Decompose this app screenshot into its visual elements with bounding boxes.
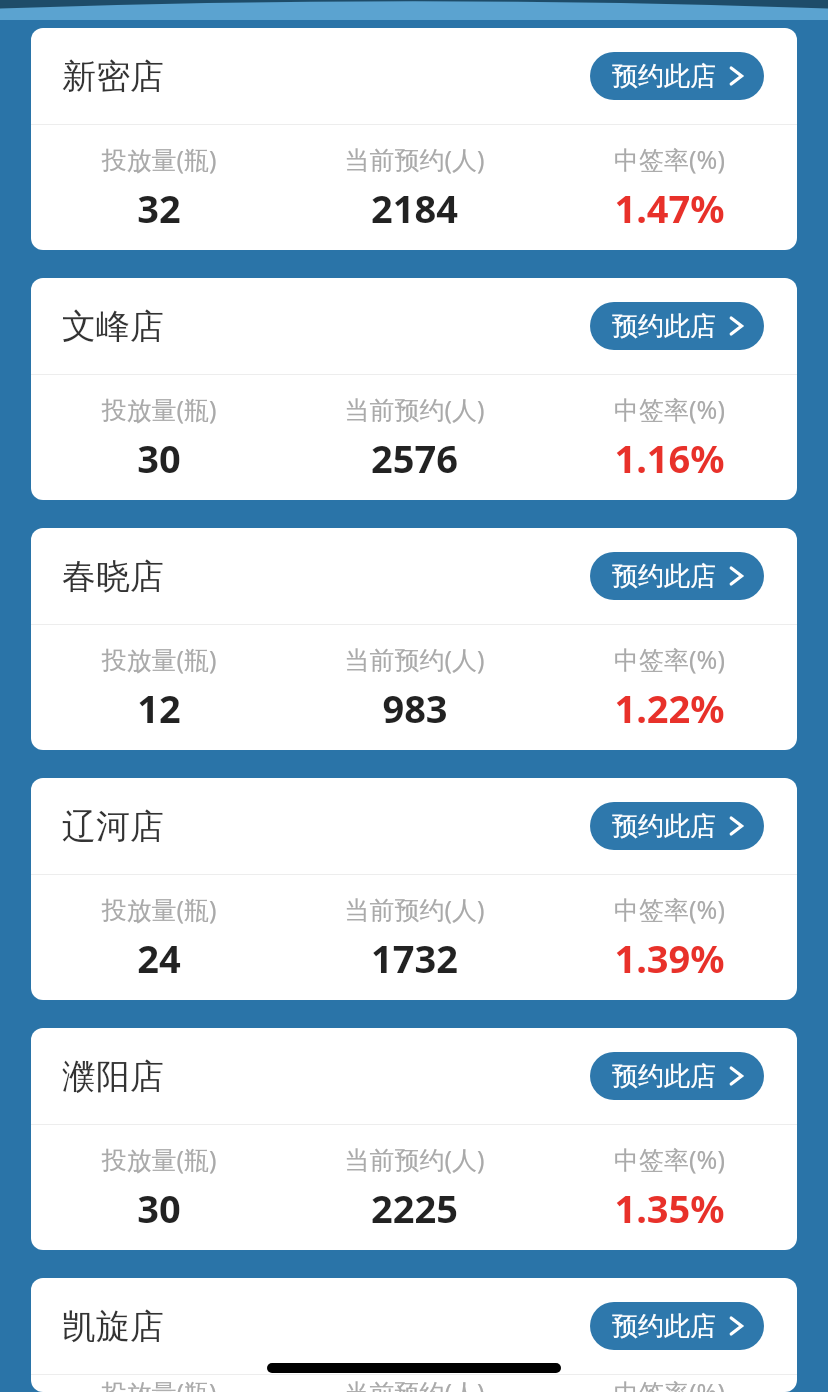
staticText: 当前预约(人) bbox=[344, 142, 485, 176]
button[interactable]: 预约此店 bbox=[590, 52, 764, 100]
staticText: 预约此店 bbox=[612, 60, 716, 93]
button[interactable]: 预约此店 bbox=[590, 1052, 764, 1100]
button[interactable]: 春晓店 bbox=[31, 528, 797, 750]
button[interactable]: 预约此店 bbox=[590, 552, 764, 600]
staticText: 中签率(%) bbox=[614, 1375, 725, 1392]
staticText: 2225 bbox=[371, 1182, 458, 1234]
staticText: 1.16% bbox=[614, 432, 725, 484]
staticText: 983 bbox=[382, 682, 448, 734]
staticText: 1.39% bbox=[614, 932, 725, 984]
staticText: 预约此店 bbox=[612, 810, 716, 843]
button[interactable]: 濮阳店 bbox=[31, 1028, 797, 1250]
staticText: 中签率(%) bbox=[614, 892, 725, 926]
staticText: 中签率(%) bbox=[614, 392, 725, 426]
staticText: 投放量(瓶) bbox=[101, 642, 217, 676]
staticText: 投放量(瓶) bbox=[101, 392, 217, 426]
button[interactable]: 文峰店 bbox=[31, 278, 797, 500]
staticText: 中签率(%) bbox=[614, 642, 725, 676]
staticText: 当前预约(人) bbox=[344, 1142, 485, 1176]
staticText: 当前预约(人) bbox=[344, 1375, 485, 1392]
staticText: 1.22% bbox=[614, 682, 725, 734]
staticText: 凯旋店 bbox=[62, 1305, 164, 1348]
staticText: 预约此店 bbox=[612, 310, 716, 343]
staticText: 投放量(瓶) bbox=[101, 142, 217, 176]
staticText: 预约此店 bbox=[612, 1310, 716, 1343]
other: 前往预约 bbox=[726, 1316, 746, 1336]
staticText: 濮阳店 bbox=[62, 1055, 164, 1098]
button[interactable]: 预约此店 bbox=[590, 1302, 764, 1350]
other: 前往预约 bbox=[726, 816, 746, 836]
staticText: 2576 bbox=[371, 432, 458, 484]
staticText: 预约此店 bbox=[612, 1060, 716, 1093]
button[interactable]: 预约此店 bbox=[590, 802, 764, 850]
staticText: 当前预约(人) bbox=[344, 392, 485, 426]
other: 前往预约 bbox=[726, 316, 746, 336]
staticText: 中签率(%) bbox=[614, 1142, 725, 1176]
staticText: 投放量(瓶) bbox=[101, 1375, 217, 1392]
button[interactable]: 预约此店 bbox=[590, 302, 764, 350]
staticText: 1.47% bbox=[614, 182, 725, 234]
other: 前往预约 bbox=[726, 566, 746, 586]
staticText: 1732 bbox=[371, 932, 458, 984]
staticText: 当前预约(人) bbox=[344, 892, 485, 926]
staticText: 当前预约(人) bbox=[344, 642, 485, 676]
other: 前往预约 bbox=[726, 1066, 746, 1086]
button[interactable]: 新密店 bbox=[31, 28, 797, 250]
staticText: 12 bbox=[137, 682, 181, 734]
other: 前往预约 bbox=[726, 66, 746, 86]
button[interactable]: 凯旋店 bbox=[31, 1278, 797, 1392]
staticText: 预约此店 bbox=[612, 560, 716, 593]
staticText: 30 bbox=[137, 432, 181, 484]
staticText: 投放量(瓶) bbox=[101, 1142, 217, 1176]
staticText: 1.35% bbox=[614, 1182, 725, 1234]
staticText: 春晓店 bbox=[62, 555, 164, 598]
staticText: 24 bbox=[137, 932, 181, 984]
staticText: 辽河店 bbox=[62, 805, 164, 848]
staticText: 30 bbox=[137, 1182, 181, 1234]
staticText: 32 bbox=[137, 182, 181, 234]
staticText: 新密店 bbox=[62, 55, 164, 98]
staticText: 2184 bbox=[371, 182, 458, 234]
staticText: 文峰店 bbox=[62, 305, 164, 348]
button[interactable]: 辽河店 bbox=[31, 778, 797, 1000]
staticText: 投放量(瓶) bbox=[101, 892, 217, 926]
staticText: 中签率(%) bbox=[614, 142, 725, 176]
